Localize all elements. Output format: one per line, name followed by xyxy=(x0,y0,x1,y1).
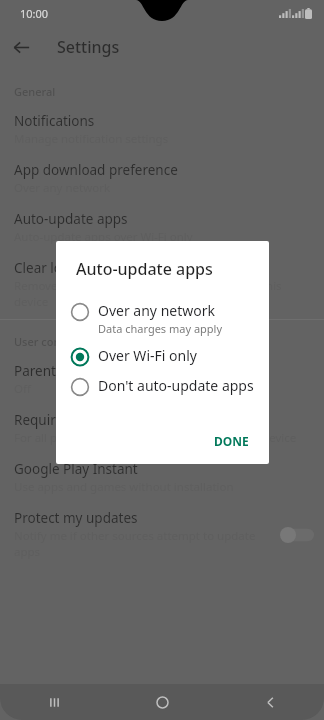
staticText: Protect my updates xyxy=(14,509,138,527)
staticText: Don't auto-update apps xyxy=(98,376,254,395)
staticText: Parental controls xyxy=(14,362,122,380)
staticText: User controls xyxy=(14,334,84,349)
staticText: General xyxy=(14,84,56,99)
button[interactable]: Back xyxy=(0,26,42,68)
button[interactable]: Clear local search history xyxy=(0,248,324,313)
staticText: Auto-update apps over Wi-Fi only xyxy=(14,229,193,245)
button[interactable]: Parental controls xyxy=(0,351,324,400)
button[interactable]: Protect my updates xyxy=(0,498,324,563)
button[interactable]: Require authentication for purchases xyxy=(0,400,324,449)
staticText: Data charges may apply xyxy=(98,321,223,336)
button[interactable]: Over any network xyxy=(56,296,269,341)
button[interactable]: App download preference xyxy=(0,150,324,199)
button[interactable]: Notifications xyxy=(0,101,324,150)
staticText: DONE xyxy=(214,433,249,449)
staticText: Over Wi-Fi only xyxy=(98,346,197,365)
button[interactable]: Home xyxy=(108,684,216,720)
staticText: 10:00 xyxy=(20,6,49,21)
staticText: Over any network xyxy=(98,301,215,320)
button[interactable]: DONE xyxy=(206,428,257,454)
staticText: Clear local search history xyxy=(14,259,173,277)
staticText: Settings xyxy=(57,36,120,58)
staticText: Notifications xyxy=(14,112,95,130)
button[interactable]: Google Play Instant xyxy=(0,449,324,498)
button[interactable]: Over Wi-Fi only xyxy=(56,341,269,371)
button[interactable]: Auto-update apps xyxy=(0,199,324,248)
staticText: Auto-update apps xyxy=(76,258,213,280)
staticText: Remove the searches you have performed o… xyxy=(14,278,310,310)
button[interactable]: Back xyxy=(216,684,324,720)
staticText: Auto-update apps xyxy=(14,210,128,228)
button[interactable]: Recent apps xyxy=(0,684,108,720)
staticText: For all purchases through Google Play on… xyxy=(14,430,297,446)
button[interactable]: Don't auto-update apps xyxy=(56,371,269,401)
staticText: App download preference xyxy=(14,161,178,179)
staticText: Google Play Instant xyxy=(14,460,138,478)
staticText: Require authentication for purchases xyxy=(14,411,250,429)
button[interactable]: Protect my updates toggle xyxy=(280,527,314,543)
